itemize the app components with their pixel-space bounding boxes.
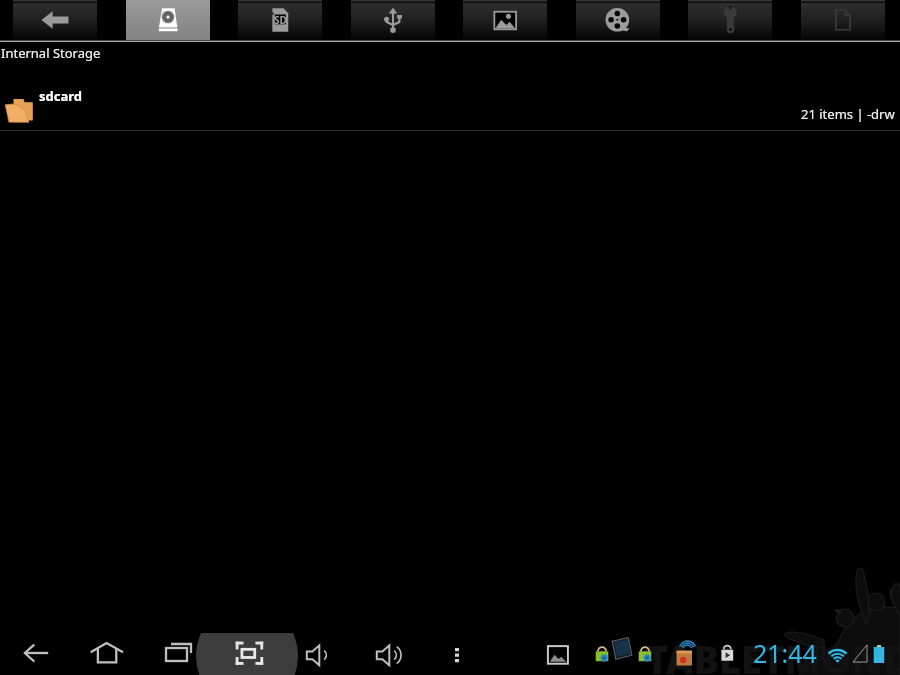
staticText: TABLETMONDE [646, 633, 900, 675]
button[interactable]: sdcard [0, 66, 900, 131]
button[interactable]: Recent apps [155, 630, 201, 675]
staticText: 21 items | -drw [801, 105, 895, 123]
button[interactable]: Back [13, 0, 97, 40]
button[interactable]: More options [434, 630, 480, 675]
button[interactable]: Volume up [364, 630, 410, 675]
button[interactable]: Videos [576, 0, 660, 40]
button[interactable]: Images [463, 0, 547, 40]
button[interactable]: Volume down [294, 630, 340, 675]
button[interactable]: Documents [801, 0, 885, 40]
button[interactable]: Screenshot captured [535, 630, 581, 675]
button[interactable]: Back [13, 630, 59, 675]
button[interactable]: Home [84, 630, 130, 675]
staticText: Internal Storage [1, 44, 101, 62]
button[interactable]: SD card [238, 0, 322, 40]
button[interactable]: USB storage [351, 0, 435, 40]
button[interactable]: Internal storage [126, 0, 210, 40]
button[interactable]: Screenshot [225, 630, 271, 675]
staticText: SD [274, 13, 287, 27]
staticText: 21:44 [753, 636, 817, 670]
button[interactable]: Tools [688, 0, 772, 40]
staticText: sdcard [39, 87, 83, 105]
